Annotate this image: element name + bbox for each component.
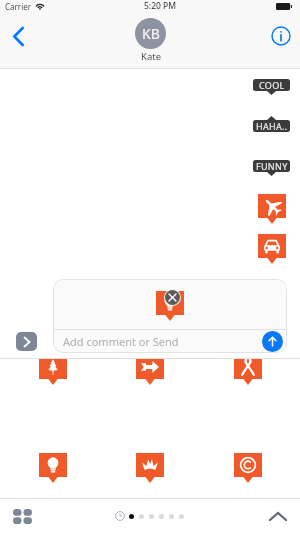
button[interactable]: COOL xyxy=(253,79,290,95)
staticText: 5:20 PM xyxy=(144,0,177,12)
button[interactable]: KB xyxy=(135,18,166,63)
staticText: COOL xyxy=(259,79,285,91)
button[interactable]: Back xyxy=(2,20,34,52)
staticText: Add comment or Send xyxy=(63,334,179,349)
button[interactable]: Tree xyxy=(39,359,67,385)
button[interactable]: Remove sticker xyxy=(165,290,180,305)
button[interactable]: Bulb xyxy=(39,453,67,483)
button[interactable]: Expand xyxy=(255,499,300,533)
button[interactable]: Plane xyxy=(258,194,286,224)
button[interactable]: Sticker packs xyxy=(0,499,45,533)
staticText: FUNNY xyxy=(256,160,288,172)
button[interactable]: FUNNY xyxy=(253,160,290,176)
button[interactable]: Bulb xyxy=(156,291,184,321)
button[interactable]: Crown xyxy=(136,453,164,483)
button[interactable]: Send xyxy=(262,331,283,352)
button[interactable]: Car xyxy=(258,234,286,264)
staticText: Carrier xyxy=(5,1,32,12)
button[interactable]: Add comment or Send xyxy=(63,334,266,349)
staticText: HAHA.. xyxy=(256,120,288,132)
button[interactable]: Arrow xyxy=(136,359,164,385)
button[interactable]: Next xyxy=(16,332,37,351)
staticText: Kate xyxy=(141,50,161,63)
button[interactable]: Info xyxy=(265,20,297,52)
staticText: KB xyxy=(142,24,160,43)
button[interactable]: Copyright xyxy=(234,453,262,483)
button[interactable]: HAHA.. xyxy=(253,116,290,132)
button[interactable]: Ribbon xyxy=(234,359,262,385)
